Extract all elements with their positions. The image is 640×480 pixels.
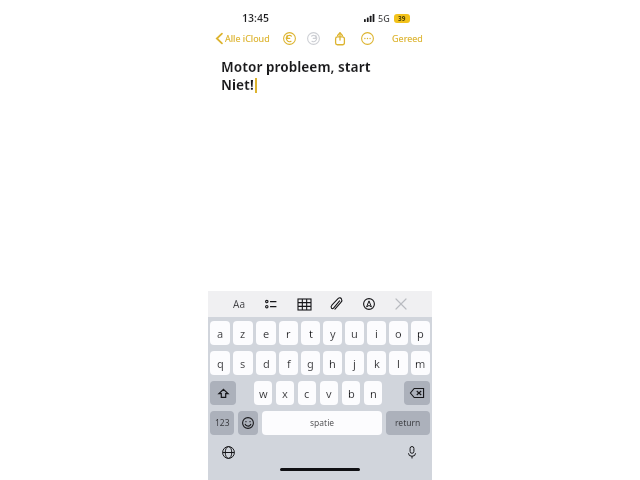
staticText: Niet! xyxy=(221,76,254,94)
button[interactable]: n xyxy=(364,381,382,405)
staticText: y xyxy=(330,326,336,341)
staticText: b xyxy=(348,386,355,401)
button[interactable]: p xyxy=(411,321,430,345)
staticText: v xyxy=(326,386,332,401)
staticText: spatie xyxy=(310,417,335,429)
staticText: w xyxy=(259,386,268,401)
staticText: x xyxy=(282,386,288,401)
button[interactable]: c xyxy=(298,381,316,405)
staticText: 13:45 xyxy=(242,11,269,25)
button[interactable]: o xyxy=(389,321,408,345)
button[interactable]: spatie xyxy=(262,411,382,435)
button[interactable]: Gereed xyxy=(389,30,426,46)
staticText: z xyxy=(240,326,246,341)
button[interactable]: i xyxy=(367,321,386,345)
staticText: j xyxy=(353,356,356,371)
button[interactable]: f xyxy=(279,351,298,375)
button[interactable]: Numbers xyxy=(210,411,234,435)
button[interactable]: Text format xyxy=(230,295,248,313)
staticText: q xyxy=(217,356,224,371)
staticText: d xyxy=(263,356,270,371)
button[interactable]: Backspace xyxy=(404,381,430,405)
button[interactable]: Shift xyxy=(210,381,236,405)
button[interactable]: j xyxy=(345,351,364,375)
button[interactable]: Undo xyxy=(281,30,297,46)
button[interactable]: b xyxy=(342,381,360,405)
staticText: return xyxy=(395,417,421,429)
button[interactable]: v xyxy=(320,381,338,405)
button[interactable]: e xyxy=(256,321,276,345)
staticText: Alle iCloud xyxy=(225,32,270,44)
staticText: e xyxy=(263,326,270,341)
button[interactable]: d xyxy=(256,351,276,375)
button[interactable]: Checklist xyxy=(262,295,280,313)
button[interactable]: m xyxy=(411,351,430,375)
staticText: c xyxy=(304,386,310,401)
button[interactable]: Markup xyxy=(360,295,378,313)
button[interactable]: Attach xyxy=(327,295,345,313)
button[interactable]: l xyxy=(389,351,408,375)
button[interactable]: x xyxy=(276,381,294,405)
staticText: 39 xyxy=(398,14,406,23)
button[interactable]: r xyxy=(279,321,298,345)
button[interactable]: y xyxy=(323,321,342,345)
staticText: i xyxy=(375,326,378,341)
button[interactable]: Change keyboard xyxy=(218,442,238,462)
button[interactable]: Table xyxy=(295,295,313,313)
button[interactable]: More options xyxy=(359,30,375,46)
staticText: f xyxy=(287,356,291,371)
staticText: t xyxy=(309,326,313,341)
button[interactable]: Share xyxy=(331,29,349,47)
staticText: 5G xyxy=(378,12,390,24)
staticText: h xyxy=(329,356,336,371)
staticText: m xyxy=(415,356,426,371)
staticText: n xyxy=(370,386,377,401)
button[interactable]: z xyxy=(233,321,253,345)
staticText: a xyxy=(217,326,224,341)
staticText: r xyxy=(286,326,291,341)
staticText: Gereed xyxy=(392,32,423,44)
staticText: s xyxy=(240,356,246,371)
button[interactable]: Return xyxy=(386,411,430,435)
button[interactable]: Emoji xyxy=(238,411,258,435)
staticText: l xyxy=(397,356,400,371)
staticText: 123 xyxy=(215,417,230,429)
staticText: g xyxy=(307,356,314,371)
staticText: Motor probleem, start xyxy=(221,58,371,76)
staticText: u xyxy=(351,326,358,341)
button[interactable]: Alle iCloud xyxy=(214,30,272,46)
button[interactable]: s xyxy=(233,351,253,375)
button[interactable]: u xyxy=(345,321,364,345)
button[interactable]: w xyxy=(254,381,272,405)
button[interactable]: a xyxy=(210,321,230,345)
button[interactable]: t xyxy=(301,321,320,345)
staticText: p xyxy=(417,326,424,341)
button[interactable]: Redo xyxy=(305,30,321,46)
button[interactable]: Close keyboard xyxy=(392,295,410,313)
staticText: k xyxy=(374,356,380,371)
button[interactable]: q xyxy=(210,351,230,375)
button[interactable]: Dictate xyxy=(402,442,422,462)
button[interactable]: k xyxy=(367,351,386,375)
button[interactable]: g xyxy=(301,351,320,375)
button[interactable]: h xyxy=(323,351,342,375)
staticText: o xyxy=(395,326,402,341)
staticText: Aa xyxy=(233,297,245,311)
